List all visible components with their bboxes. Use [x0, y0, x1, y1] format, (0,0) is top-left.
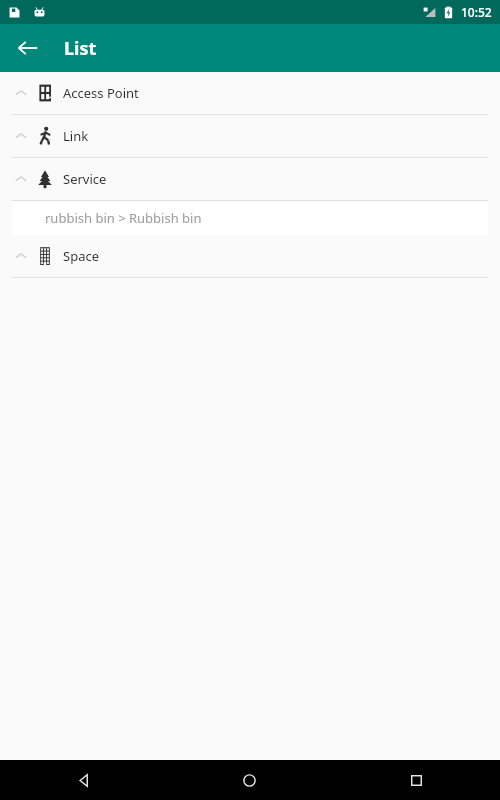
button[interactable]: Service — [0, 158, 500, 200]
staticText: 10:52 — [461, 4, 492, 20]
button[interactable]: Recent apps — [333, 760, 500, 800]
button[interactable]: rubbish bin > Rubbish bin — [12, 201, 488, 235]
button[interactable]: Back — [0, 760, 166, 800]
button[interactable]: Link — [0, 115, 500, 157]
button[interactable]: Space — [0, 235, 500, 277]
button[interactable]: Access Point — [0, 72, 500, 114]
staticText: Space — [63, 247, 99, 265]
button[interactable]: Back — [8, 28, 48, 68]
staticText: Service — [63, 170, 107, 188]
staticText: Link — [63, 127, 89, 145]
staticText: Access Point — [63, 84, 139, 102]
staticText: rubbish bin > Rubbish bin — [45, 209, 202, 227]
button[interactable]: Home — [166, 760, 333, 800]
staticText: List — [64, 36, 97, 61]
